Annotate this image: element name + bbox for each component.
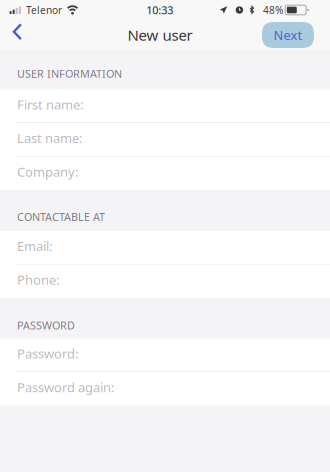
- button[interactable]: Next: [262, 22, 314, 48]
- staticText: Last name:: [17, 129, 82, 147]
- staticText: First name:: [17, 96, 83, 113]
- staticText: Company:: [17, 163, 78, 180]
- button[interactable]: Password again:: [0, 372, 330, 405]
- button[interactable]: Last name:: [0, 123, 330, 156]
- staticText: 48%: [263, 3, 283, 17]
- button[interactable]: Back: [0, 20, 34, 50]
- button[interactable]: Email:: [0, 231, 330, 264]
- staticText: CONTACTABLE AT: [17, 210, 105, 224]
- staticText: Email:: [17, 237, 52, 255]
- staticText: Telenor: [26, 3, 62, 17]
- staticText: Password again:: [17, 379, 114, 396]
- staticText: Password:: [17, 345, 78, 362]
- staticText: Next: [273, 26, 302, 43]
- staticText: Phone:: [17, 271, 59, 288]
- button[interactable]: First name:: [0, 89, 330, 123]
- staticText: PASSWORD: [17, 318, 75, 332]
- button[interactable]: Phone:: [0, 264, 330, 298]
- button[interactable]: Password:: [0, 338, 330, 372]
- staticText: 10:33: [146, 3, 173, 17]
- staticText: USER INFORMATION: [17, 66, 122, 81]
- staticText: New user: [127, 25, 192, 45]
- button[interactable]: Company:: [0, 156, 330, 190]
